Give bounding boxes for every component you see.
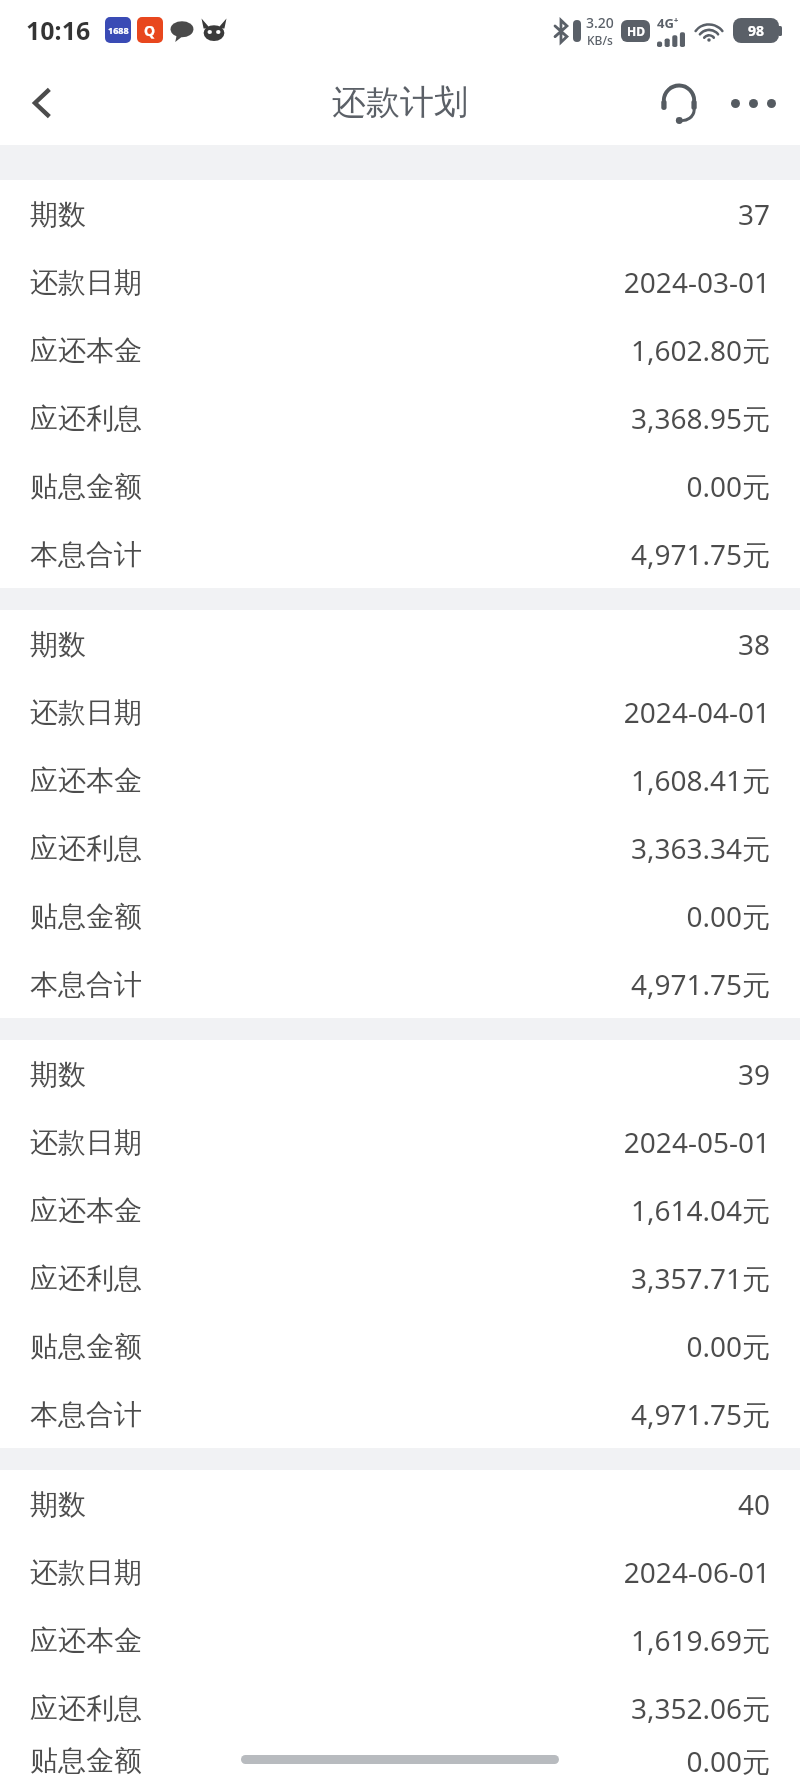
staticText: 应还利息 (30, 831, 142, 866)
staticText: KB/s (587, 32, 613, 48)
staticText: 3.20 (586, 13, 614, 32)
staticText: 2024-04-01 (623, 693, 770, 731)
staticText: 37 (737, 195, 770, 233)
staticText: 4,971.75元 (630, 965, 770, 1003)
staticText: 3,363.34元 (630, 829, 770, 867)
staticText: 应还利息 (30, 1261, 142, 1296)
staticText: 还款日期 (30, 1125, 142, 1160)
staticText: HD (627, 23, 645, 39)
staticText: 98 (748, 21, 765, 40)
staticText: 还款计划 (332, 81, 468, 124)
staticText: 38 (737, 625, 770, 663)
staticText: 期数 (30, 1487, 86, 1522)
staticText: 应还本金 (30, 1623, 142, 1658)
staticText: 1,614.04元 (630, 1191, 770, 1229)
staticText: 还款日期 (30, 1555, 142, 1590)
staticText: 应还本金 (30, 1193, 142, 1228)
staticText: 0.00元 (686, 1742, 770, 1778)
staticText: 应还本金 (30, 333, 142, 368)
staticText: Q (144, 21, 156, 40)
staticText: 还款日期 (30, 695, 142, 730)
staticText: 0.00元 (686, 1327, 770, 1365)
staticText: 2024-06-01 (623, 1553, 770, 1591)
button[interactable]: 期数 (0, 610, 800, 1018)
staticText: 3,368.95元 (630, 399, 770, 437)
staticText: 2024-03-01 (623, 263, 770, 301)
staticText: 期数 (30, 1057, 86, 1092)
staticText: 1,602.80元 (630, 331, 770, 369)
button[interactable]: 返回 (0, 61, 84, 145)
button[interactable]: 更多 (716, 66, 790, 140)
staticText: 0.00元 (686, 897, 770, 935)
staticText: 期数 (30, 627, 86, 662)
staticText: 贴息金额 (30, 1329, 142, 1364)
staticText: 1688 (108, 24, 129, 36)
staticText: 4G⁺ (657, 14, 679, 32)
staticText: 还款日期 (30, 265, 142, 300)
staticText: 贴息金额 (30, 899, 142, 934)
staticText: 40 (737, 1485, 770, 1523)
staticText: 本息合计 (30, 967, 142, 1002)
staticText: 3,357.71元 (630, 1259, 770, 1297)
staticText: 贴息金额 (30, 1743, 142, 1778)
staticText: 2024-05-01 (623, 1123, 770, 1161)
staticText: 10:16 (26, 13, 91, 47)
staticText: 应还利息 (30, 1691, 142, 1726)
button[interactable]: 客服 (642, 66, 716, 140)
staticText: 应还利息 (30, 401, 142, 436)
staticText: 贴息金额 (30, 469, 142, 504)
staticText: 1,619.69元 (630, 1621, 770, 1659)
staticText: 应还本金 (30, 763, 142, 798)
button[interactable]: 期数 (0, 1040, 800, 1448)
staticText: 期数 (30, 197, 86, 232)
staticText: 1,608.41元 (630, 761, 770, 799)
staticText: 本息合计 (30, 1397, 142, 1432)
button[interactable]: 期数 (0, 180, 800, 588)
staticText: 4,971.75元 (630, 535, 770, 573)
staticText: 3,352.06元 (630, 1689, 770, 1727)
button[interactable]: 期数 (0, 1470, 800, 1778)
staticText: 4,971.75元 (630, 1395, 770, 1433)
staticText: 本息合计 (30, 537, 142, 572)
staticText: 0.00元 (686, 467, 770, 505)
staticText: 39 (737, 1055, 770, 1093)
